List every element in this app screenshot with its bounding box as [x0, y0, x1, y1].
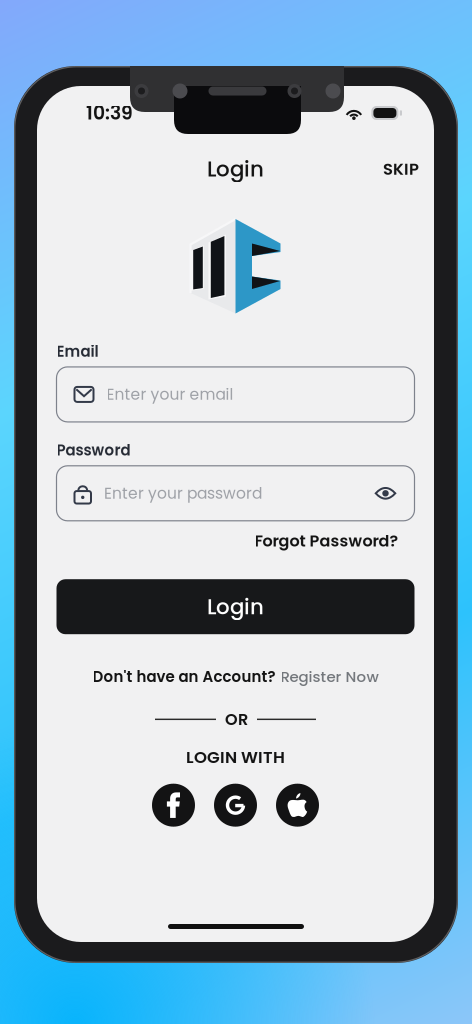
staticText: Register Now [280, 666, 378, 687]
button[interactable]: Forgot Password? [254, 530, 398, 552]
button[interactable]: Sign in with Google [214, 784, 257, 827]
staticText: Enter your email [106, 384, 233, 405]
staticText: SKIP [383, 158, 419, 180]
staticText: Login [207, 592, 264, 622]
button[interactable]: Sign in with Facebook [152, 784, 195, 827]
staticText: 10:39 [86, 100, 133, 126]
staticText: Password [56, 440, 130, 461]
staticText: Don't have an Account? [92, 666, 275, 687]
staticText: LOGIN WITH [186, 745, 285, 769]
button[interactable]: Login [56, 579, 414, 634]
staticText: Login [207, 154, 264, 184]
staticText: Forgot Password? [254, 530, 398, 552]
button[interactable]: SKIP [379, 153, 423, 185]
button[interactable]: Register Now [280, 666, 378, 687]
button[interactable]: Show password [370, 482, 400, 505]
staticText: Enter your password [104, 482, 262, 504]
staticText: Email [56, 341, 98, 362]
button[interactable]: Sign in with Apple [276, 784, 319, 827]
staticText: OR [225, 708, 248, 730]
